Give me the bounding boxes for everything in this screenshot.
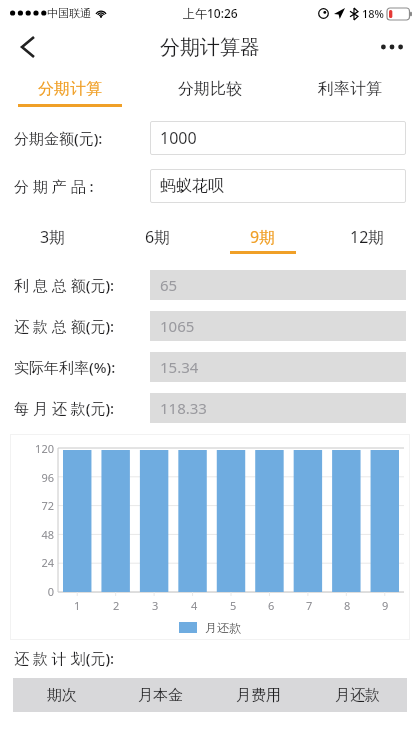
staticText: 分期计算 <box>38 79 102 99</box>
button[interactable]: 6期 <box>105 216 210 258</box>
staticText: 7 <box>306 598 313 613</box>
staticText: 实际年利率(%): <box>14 357 150 377</box>
staticText: 月费用 <box>236 686 281 705</box>
staticText: 月本金 <box>138 686 183 705</box>
staticText: 120 <box>12 441 54 456</box>
button[interactable]: 分期计算 <box>0 68 140 110</box>
staticText: 利率计算 <box>318 79 382 99</box>
staticText: 分 期 产 品 : <box>14 176 150 196</box>
staticText: 9 <box>382 598 389 613</box>
staticText: 3 <box>152 598 159 613</box>
button[interactable]: 9期 <box>210 216 315 258</box>
staticText: 12期 <box>350 226 385 248</box>
staticText: 月还款 <box>335 686 380 705</box>
staticText: 中国联通 <box>47 6 91 20</box>
staticText: 1065 <box>160 316 195 336</box>
staticText: 利 息 总 额(元): <box>14 275 150 295</box>
staticText: 6 <box>268 598 275 613</box>
staticText: 分期比较 <box>178 79 242 99</box>
staticText: 月还款 <box>205 620 241 635</box>
button[interactable]: Back <box>8 27 48 67</box>
button[interactable]: More options <box>372 27 412 67</box>
staticText: 3期 <box>40 226 66 248</box>
staticText: 每 月 还 款(元): <box>14 398 150 418</box>
button[interactable]: 蚂蚁花呗 <box>150 169 406 203</box>
staticText: 48 <box>12 527 54 542</box>
staticText: 上午10:26 <box>183 5 238 21</box>
staticText: 1 <box>74 598 81 613</box>
staticText: 4 <box>191 598 198 613</box>
staticText: 24 <box>12 555 54 570</box>
staticText: 8 <box>344 598 351 613</box>
staticText: 0 <box>12 584 54 599</box>
staticText: 5 <box>230 598 237 613</box>
staticText: 2 <box>113 598 120 613</box>
staticText: 65 <box>160 275 178 295</box>
staticText: 分期金额(元): <box>14 128 150 148</box>
button[interactable]: 分期比较 <box>140 68 280 110</box>
button[interactable]: 利率计算 <box>280 68 420 110</box>
staticText: 72 <box>12 498 54 513</box>
button[interactable]: 3期 <box>0 216 105 258</box>
button[interactable]: 1000 <box>150 121 406 155</box>
staticText: 期次 <box>47 686 77 705</box>
staticText: 15.34 <box>160 357 199 377</box>
staticText: 还 款 总 额(元): <box>14 316 150 336</box>
staticText: 96 <box>12 470 54 485</box>
staticText: 1000 <box>160 127 197 149</box>
staticText: 蚂蚁花呗 <box>160 176 224 196</box>
button[interactable]: 12期 <box>315 216 420 258</box>
staticText: 还 款 计 划(元): <box>14 648 115 668</box>
staticText: 9期 <box>250 226 276 248</box>
staticText: 分期计算器 <box>160 35 260 60</box>
staticText: 18% <box>362 6 384 21</box>
staticText: 118.33 <box>160 398 207 418</box>
staticText: 6期 <box>145 226 171 248</box>
